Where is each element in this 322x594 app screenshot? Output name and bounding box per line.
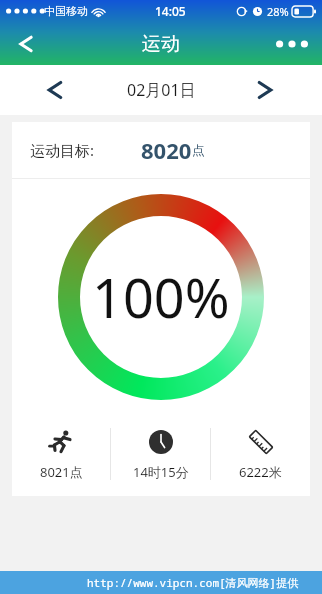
staticText: 点 — [192, 142, 205, 158]
button[interactable]: Next day — [248, 73, 282, 107]
staticText: 100% — [92, 260, 230, 334]
staticText: 28% — [267, 4, 289, 19]
button[interactable]: 14时15分 — [111, 414, 210, 494]
staticText: 运动 — [142, 32, 180, 56]
button[interactable]: 8021点 — [12, 414, 110, 494]
staticText: 14:05 — [155, 3, 186, 19]
staticText: 中国移动 — [44, 4, 88, 18]
staticText: 运动目标: — [30, 140, 95, 160]
staticText: 8021点 — [40, 463, 83, 481]
staticText: http://www.vipcn.com[清风网络]提供 — [87, 575, 299, 590]
button[interactable]: Back — [6, 24, 46, 64]
button[interactable]: 6222米 — [211, 414, 310, 494]
staticText: 8020 — [141, 135, 192, 165]
button[interactable]: Previous day — [38, 73, 72, 107]
button[interactable]: More options — [270, 25, 314, 63]
staticText: 14时15分 — [133, 463, 189, 481]
staticText: 02月01日 — [127, 79, 196, 101]
staticText: 6222米 — [239, 463, 282, 481]
